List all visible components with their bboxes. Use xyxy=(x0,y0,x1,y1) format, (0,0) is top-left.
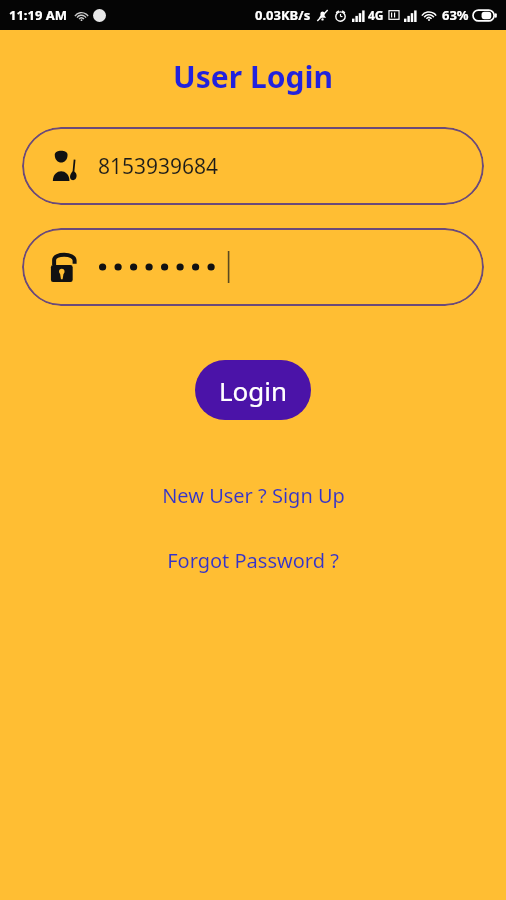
staticText: Forgot Password ? xyxy=(167,547,339,574)
staticText: 8153939684 xyxy=(98,152,219,181)
staticText: New User ? Sign Up xyxy=(162,482,345,509)
staticText: User Login xyxy=(0,56,506,97)
staticText: Login xyxy=(219,373,288,408)
staticText: 4G xyxy=(368,7,384,23)
button[interactable] xyxy=(22,228,484,306)
staticText: 63% xyxy=(442,6,469,24)
button[interactable]: New User ? Sign Up xyxy=(0,482,506,509)
button[interactable]: Login xyxy=(195,360,311,420)
button[interactable]: 8153939684 xyxy=(22,127,484,205)
staticText: 0.03KB/s xyxy=(255,6,311,24)
button[interactable]: Forgot Password ? xyxy=(0,547,506,574)
staticText: 11:19 AM xyxy=(9,6,68,24)
